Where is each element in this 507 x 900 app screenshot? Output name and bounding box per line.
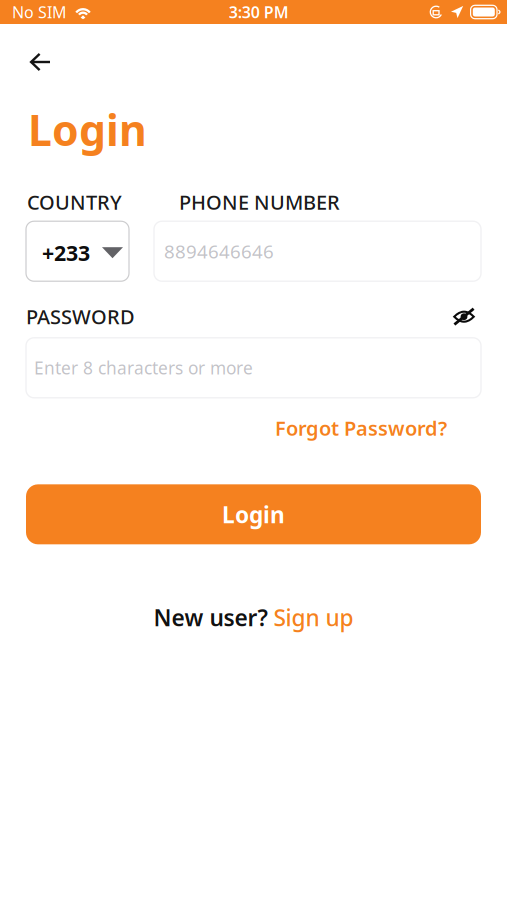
button[interactable]: Back (0, 24, 71, 101)
staticText: New user? (153, 602, 273, 632)
staticText: +233 (42, 239, 90, 267)
staticText: 3:30 PM (229, 1, 289, 23)
button[interactable]: Forgot Password? (275, 415, 447, 441)
staticText: COUNTRY (27, 189, 122, 215)
button[interactable]: Sign up (273, 602, 353, 632)
staticText: No SIM (12, 1, 67, 23)
button[interactable]: Phone number (154, 221, 481, 281)
staticText: 8894646646 (164, 239, 274, 264)
button[interactable]: Country code +233 (26, 221, 129, 281)
button[interactable]: Password (26, 338, 481, 398)
staticText: PASSWORD (26, 303, 135, 330)
staticText: PHONE NUMBER (179, 189, 340, 215)
staticText: Sign up (273, 602, 353, 632)
staticText: Login (222, 499, 285, 529)
staticText: Enter 8 characters or more (34, 356, 253, 379)
button[interactable]: Show password (453, 307, 481, 325)
staticText: Login (28, 101, 147, 158)
staticText: Forgot Password? (275, 415, 447, 441)
button[interactable]: Login (26, 484, 481, 544)
